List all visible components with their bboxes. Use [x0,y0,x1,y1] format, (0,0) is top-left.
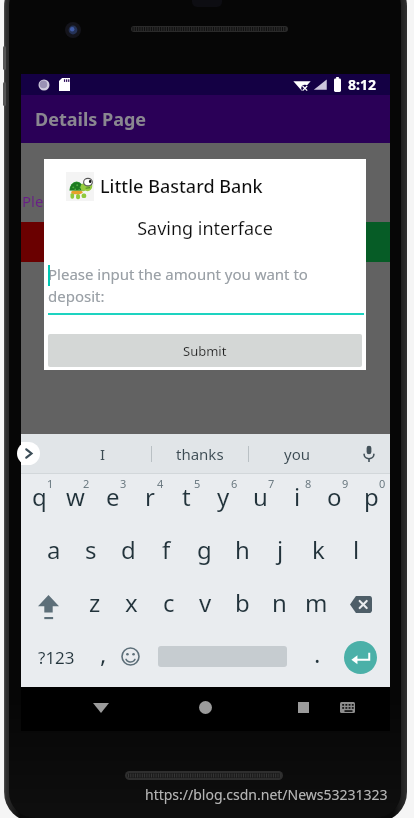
button[interactable]: e [94,474,131,528]
staticText: thanks [176,444,224,464]
staticText: 3 [120,476,127,491]
staticText: h [235,533,250,566]
staticText: Little Bastard Bank [100,174,263,199]
staticText: 9 [342,476,349,491]
staticText: Submit [183,342,227,360]
button[interactable]: , [91,634,115,687]
button[interactable]: n [261,581,298,634]
staticText: 6 [231,476,238,491]
staticText: q [32,480,47,513]
staticText: d [121,533,136,566]
button[interactable]: Details Page [21,95,390,143]
button[interactable]: Submit [48,334,362,367]
staticText: s [85,533,97,566]
staticText: Please input the amount [22,191,195,211]
button[interactable] [205,222,390,262]
staticText: l [353,533,360,566]
staticText: you [284,444,310,464]
button[interactable]: y [205,474,242,528]
staticText: f [162,533,171,566]
button[interactable]: s [72,528,109,581]
button[interactable]: o [316,474,353,528]
staticText: g [197,533,212,566]
staticText: 0 [379,476,386,491]
staticText: 7 [268,476,275,491]
staticText: . [314,637,321,670]
button[interactable]: r [131,474,168,528]
button[interactable]: j [261,528,299,581]
staticText: 2 [83,476,90,491]
button[interactable]: q [21,474,57,528]
staticText: e [106,480,120,513]
button[interactable]: Expand suggestions [21,442,40,465]
staticText: 8 [305,476,312,491]
button[interactable]: l [337,528,375,581]
button[interactable]: c [150,581,187,634]
staticText: j [277,533,284,566]
button[interactable]: u [242,474,279,528]
button[interactable]: g [185,528,223,581]
button[interactable]: z [76,581,113,634]
staticText: https://blog.csdn.net/News53231323 [145,785,388,804]
button[interactable] [21,222,205,262]
staticText: c [163,586,175,619]
staticText: x [125,586,138,619]
button[interactable]: Emoji [115,634,145,687]
staticText: y [217,480,230,513]
staticText: p [364,480,379,513]
staticText: , [100,637,107,670]
button[interactable]: Recent apps [280,687,326,728]
button[interactable]: v [187,581,224,634]
button[interactable]: Enter [344,641,377,674]
staticText: z [89,586,101,619]
staticText: t [182,480,191,513]
staticText: ?123 [38,646,75,669]
staticText: o [327,480,342,513]
staticText: w [66,480,85,513]
staticText: i [294,480,301,513]
staticText: k [312,533,325,566]
staticText: m [305,586,328,619]
staticText: v [199,586,212,619]
staticText: Please input the amount you want to depo… [48,264,364,306]
staticText: Details Page [35,107,147,132]
button[interactable]: p [353,474,390,528]
staticText: 5 [194,476,201,491]
staticText: r [145,480,155,513]
staticText: 1 [47,476,54,491]
staticText: u [253,480,268,513]
button[interactable]: h [223,528,261,581]
button[interactable]: a [35,528,72,581]
button[interactable]: Space [145,634,300,687]
button[interactable]: Back [78,687,124,728]
button[interactable]: m [298,581,335,634]
button[interactable]: Voice input [351,436,387,472]
staticText: I [100,444,106,464]
button[interactable]: ?123 [21,634,91,687]
staticText: 4 [157,476,164,491]
button[interactable]: k [299,528,337,581]
button[interactable]: thanks [152,434,248,473]
button[interactable]: Shift [21,581,76,634]
staticText: a [47,533,61,566]
staticText: n [272,586,287,619]
button[interactable]: t [168,474,205,528]
button[interactable]: b [224,581,261,634]
button[interactable]: w [57,474,94,528]
button[interactable]: x [113,581,150,634]
button[interactable]: Switch keyboard [324,687,370,728]
button[interactable]: Backspace [335,581,390,634]
button[interactable]: Home [182,687,228,728]
button[interactable]: . [300,634,335,687]
staticText: b [235,586,250,619]
button[interactable]: i [279,474,316,528]
staticText: 8:12 [348,75,376,94]
button[interactable]: you [249,434,345,473]
button[interactable]: I [54,434,151,473]
button[interactable]: f [147,528,185,581]
button[interactable]: d [109,528,147,581]
staticText: Saving interface [44,216,366,241]
